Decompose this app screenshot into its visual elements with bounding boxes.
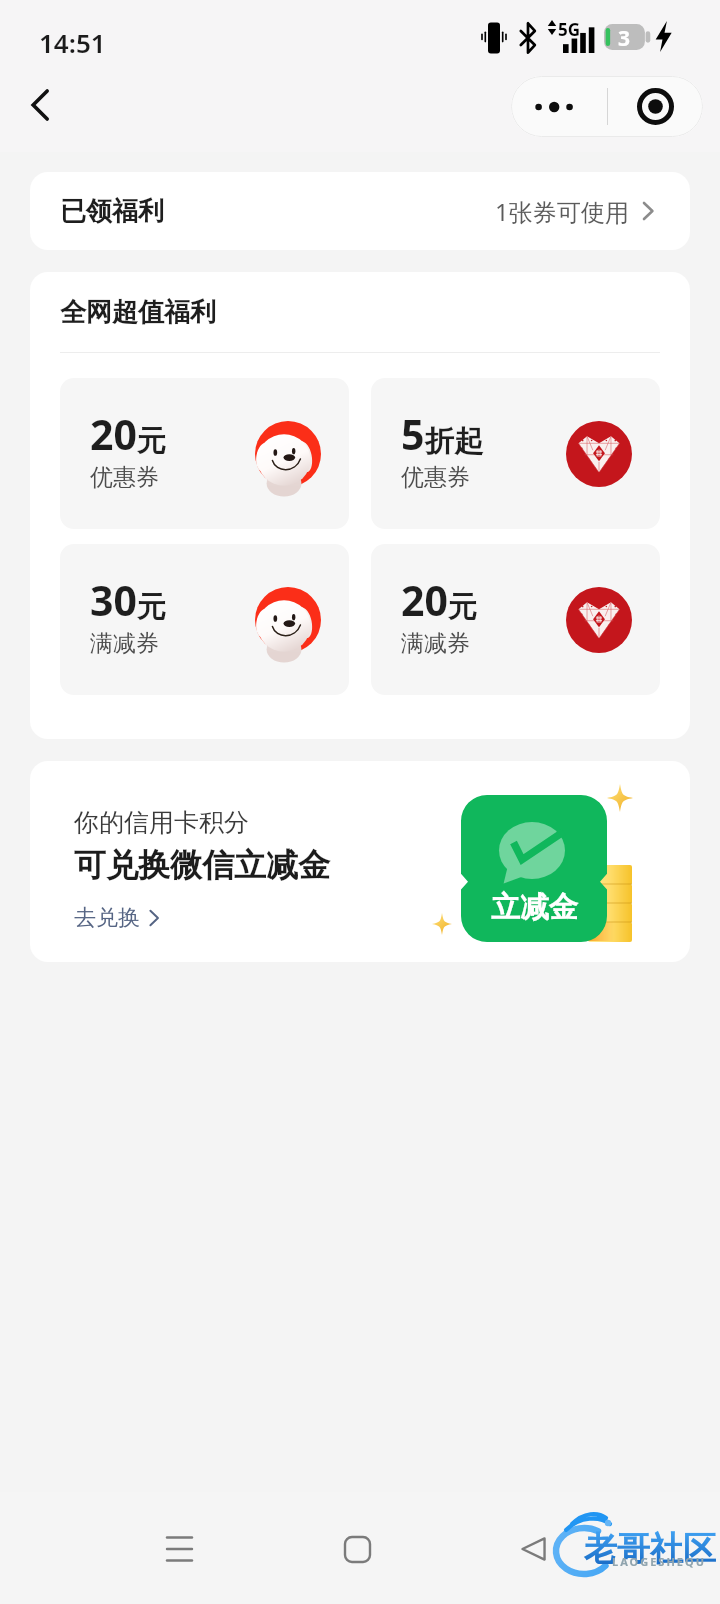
staticText: 去兑换	[74, 904, 140, 932]
staticText: 元	[448, 589, 477, 626]
staticText: 14:51	[39, 25, 106, 60]
button[interactable]: Back	[11, 76, 69, 134]
button[interactable]: Close mini program	[608, 76, 703, 137]
button[interactable]: More options	[511, 76, 607, 137]
button[interactable]: 你的信用卡积分	[30, 761, 690, 962]
button[interactable]: 20	[60, 378, 349, 529]
button[interactable]: Home	[325, 1526, 389, 1572]
staticText: 折起	[425, 423, 483, 460]
staticText: 立减金	[491, 889, 578, 926]
staticText: 你的信用卡积分	[74, 807, 249, 838]
staticText: 5G	[558, 18, 581, 41]
staticText: 老哥社区	[584, 1528, 716, 1570]
staticText: 元	[137, 423, 166, 460]
button[interactable]: 20	[371, 544, 660, 695]
staticText: 全网超值福利	[60, 296, 216, 329]
staticText: 元	[137, 589, 166, 626]
staticText: 满减券	[401, 629, 470, 658]
button[interactable]: 去兑换	[70, 900, 169, 936]
staticText: 20	[401, 572, 448, 628]
staticText: 5	[401, 406, 425, 462]
staticText: 已领福利	[60, 195, 164, 228]
button[interactable]: 5	[371, 378, 660, 529]
staticText: 3	[618, 24, 631, 50]
staticText: 1张券可使用	[495, 195, 629, 228]
button[interactable]: Recent apps	[147, 1526, 211, 1572]
staticText: 30	[90, 572, 137, 628]
button[interactable]: Back	[501, 1526, 565, 1572]
staticText: 可兑换微信立减金	[74, 845, 330, 885]
staticText: 20	[90, 406, 137, 462]
staticText: 优惠券	[401, 463, 470, 492]
button[interactable]: 30	[60, 544, 349, 695]
staticText: 满减券	[90, 629, 159, 658]
button[interactable]: 已领福利	[30, 172, 690, 250]
staticText: 优惠券	[90, 463, 159, 492]
staticText: LAOGESHEQU	[612, 1554, 707, 1569]
